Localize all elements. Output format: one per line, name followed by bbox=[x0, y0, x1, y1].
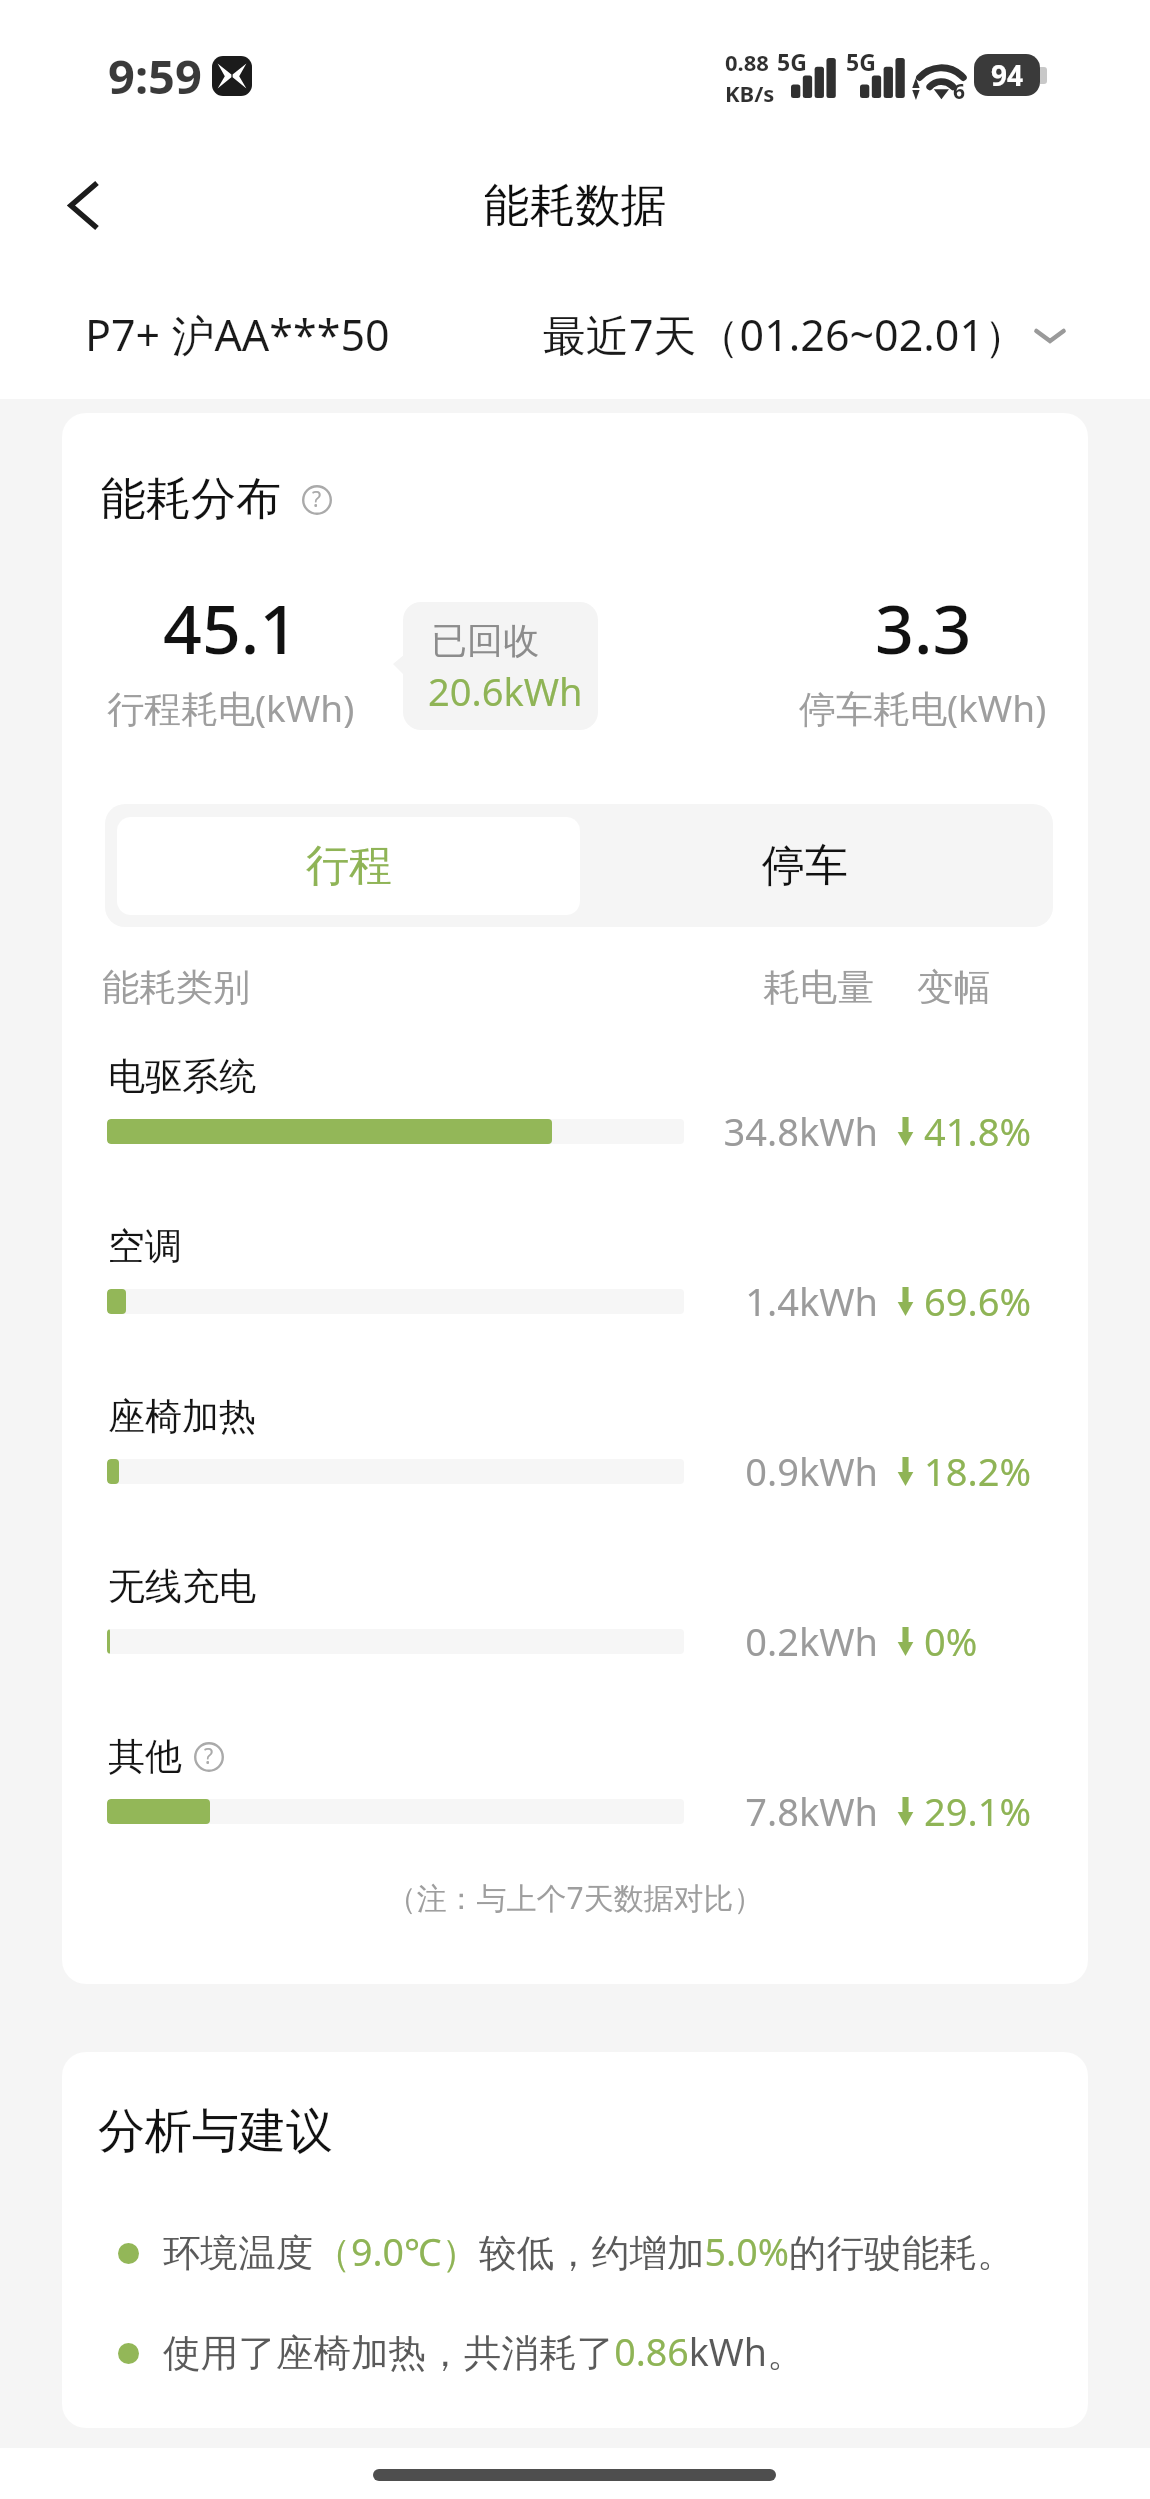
button[interactable]: About energy distribution bbox=[302, 485, 332, 515]
staticText: 能耗分布 bbox=[101, 471, 281, 528]
staticText: 停车耗电(kWh) bbox=[799, 682, 1047, 733]
staticText: 停车 bbox=[762, 839, 848, 893]
staticText: （注：与上个7天数据对比） bbox=[62, 1877, 1088, 1918]
staticText: 45.1 bbox=[163, 581, 299, 674]
staticText: 行程耗电(kWh) bbox=[107, 682, 355, 733]
staticText: 18.2% bbox=[924, 1445, 1031, 1497]
staticText: 使用了座椅加热，共消耗了0.86kWh。 bbox=[163, 2326, 805, 2377]
staticText: 41.8% bbox=[924, 1105, 1031, 1157]
staticText: 0.9kWh bbox=[658, 1445, 878, 1497]
staticText: 电驱系统 bbox=[108, 1053, 256, 1100]
staticText: 1.4kWh bbox=[658, 1275, 878, 1327]
staticText: 0.2kWh bbox=[658, 1615, 878, 1667]
staticText: 能耗数据 bbox=[484, 177, 666, 234]
staticText: 0.88 bbox=[725, 47, 769, 77]
staticText: 变幅 bbox=[917, 964, 991, 1008]
staticText: 最近7天（01.26~02.01） bbox=[543, 305, 1028, 364]
staticText: 0% bbox=[924, 1615, 978, 1667]
staticText: 分析与建议 bbox=[98, 2102, 333, 2161]
staticText: 7.8kWh bbox=[658, 1785, 878, 1837]
staticText: 行程 bbox=[306, 839, 392, 893]
staticText: 29.1% bbox=[924, 1785, 1031, 1837]
staticText: P7+ 沪AA***50 bbox=[85, 305, 390, 364]
button[interactable]: 最近7天（01.26~02.01） bbox=[543, 305, 1070, 364]
staticText: 5G bbox=[777, 46, 807, 77]
staticText: 3.3 bbox=[875, 581, 972, 674]
staticText: 34.8kWh bbox=[658, 1105, 878, 1157]
staticText: 9:59 bbox=[108, 44, 202, 108]
button[interactable]: 停车 bbox=[580, 804, 1029, 927]
staticText: 已回收 bbox=[431, 618, 539, 663]
staticText: 空调 bbox=[108, 1223, 182, 1270]
staticText: ? bbox=[204, 1742, 214, 1771]
staticText: 其他 bbox=[108, 1733, 182, 1780]
staticText: 座椅加热 bbox=[108, 1393, 256, 1440]
staticText: 环境温度（9.0℃）较低，约增加5.0%的行驶能耗。 bbox=[163, 2226, 1015, 2277]
staticText: ? bbox=[312, 485, 322, 514]
button[interactable]: Back bbox=[42, 163, 126, 247]
button[interactable]: 行程 bbox=[117, 817, 580, 915]
staticText: 69.6% bbox=[924, 1275, 1031, 1327]
staticText: 94 bbox=[991, 56, 1024, 94]
staticText: 6 bbox=[953, 77, 966, 106]
button[interactable]: About other consumption bbox=[194, 1742, 224, 1772]
staticText: KB/s bbox=[725, 78, 775, 108]
staticText: 能耗类别 bbox=[102, 964, 250, 1008]
staticText: 耗电量 bbox=[763, 964, 874, 1008]
staticText: 无线充电 bbox=[108, 1563, 256, 1610]
staticText: 20.6kWh bbox=[428, 665, 583, 717]
staticText: 5G bbox=[846, 46, 876, 77]
